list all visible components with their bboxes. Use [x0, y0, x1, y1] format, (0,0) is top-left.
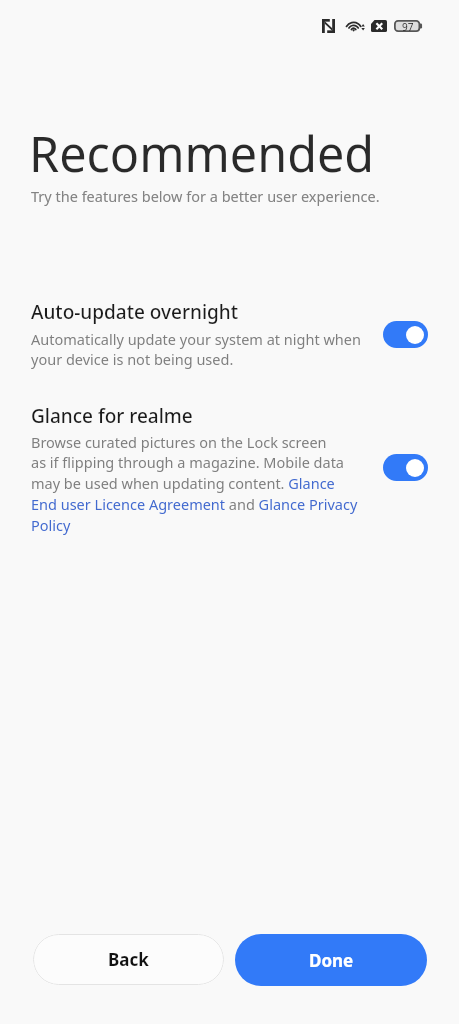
- staticText: Try the features below for a better user…: [31, 186, 380, 206]
- other: NFC on: [322, 19, 335, 33]
- button[interactable]: Auto-update overnight: [0, 292, 459, 374]
- staticText: Recommended: [29, 120, 375, 186]
- button[interactable]: Back: [33, 934, 224, 985]
- button[interactable]: Done: [235, 934, 427, 986]
- staticText: Glance for realme: [31, 403, 193, 429]
- other: No signal: [371, 20, 387, 32]
- staticText: Automatically update your system at nigh…: [31, 329, 365, 369]
- button[interactable]: Glance for realme toggle, on: [383, 454, 428, 481]
- other: Wi-Fi: [346, 18, 366, 32]
- staticText: Done: [309, 949, 354, 972]
- staticText: Auto-update overnight: [31, 299, 239, 325]
- staticText: 97: [402, 20, 414, 32]
- staticText: Back: [108, 948, 149, 971]
- button[interactable]: Auto-update overnight toggle, on: [383, 321, 428, 348]
- other: Battery 97%: [394, 20, 423, 32]
- button[interactable]: Glance for realme: [0, 396, 459, 541]
- staticText: Browse curated pictures on the Lock scre…: [31, 432, 365, 535]
